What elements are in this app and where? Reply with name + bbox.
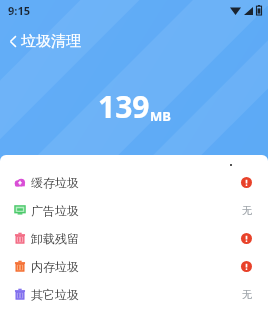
button[interactable]: 广告垃圾 [0, 196, 268, 224]
staticText: 内存垃圾 [31, 259, 79, 274]
button[interactable]: 缓存垃圾 [0, 168, 268, 196]
staticText: 其它垃圾 [31, 287, 79, 302]
staticText: 垃圾清理 [21, 32, 81, 51]
button[interactable]: 其它垃圾 [0, 280, 268, 308]
staticText: 缓存垃圾 [31, 175, 79, 190]
staticText: 9:15 [8, 3, 30, 18]
button[interactable]: 内存垃圾 [0, 252, 268, 280]
staticText: 139 [98, 86, 150, 127]
staticText: 无 [242, 204, 252, 217]
staticText: 广告垃圾 [31, 203, 79, 218]
button[interactable]: 卸载残留 [0, 224, 268, 252]
staticText: 无 [242, 288, 252, 301]
staticText: MB [150, 107, 171, 125]
button[interactable]: Back [0, 28, 93, 54]
staticText: 卸载残留 [31, 231, 79, 246]
